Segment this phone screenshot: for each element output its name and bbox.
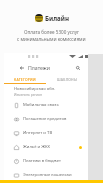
button[interactable]: Search [74,64,82,72]
button[interactable]: Жильё и ЖКХ [4,140,88,154]
staticText: Билайн [45,14,69,22]
button[interactable]: ШАБЛОНЫ [46,75,88,83]
button[interactable]: Электронные кошельки [4,168,88,182]
staticText: Погашение кредитов [23,116,67,122]
button[interactable]: Интернет и ТВ [4,126,88,140]
staticText: Изменить регион [14,92,43,96]
staticText: Платежи [28,64,50,71]
button[interactable]: Платежи в бюджет [4,154,88,168]
staticText: Оплата более 5300 услуг [24,29,80,35]
staticText: Платежи в бюджет [23,158,61,164]
staticText: Новосибирская обл. [14,86,56,92]
button[interactable]: Новосибирская обл. [4,84,88,98]
staticText: Жильё и ЖКХ [23,144,51,150]
button[interactable]: Back [18,64,25,71]
staticText: Интернет и ТВ [23,130,53,136]
staticText: Мобильная связь [23,102,59,108]
staticText: ШАБЛОНЫ [57,77,78,82]
button[interactable]: Погашение кредитов [4,112,88,126]
staticText: с минимальными комиссиями [17,36,86,42]
button[interactable]: КАТЕГОРИИ [4,75,46,83]
button[interactable]: Мобильная связь [4,98,88,112]
staticText: Электронные кошельки [23,172,72,178]
staticText: КАТЕГОРИИ [14,77,36,82]
